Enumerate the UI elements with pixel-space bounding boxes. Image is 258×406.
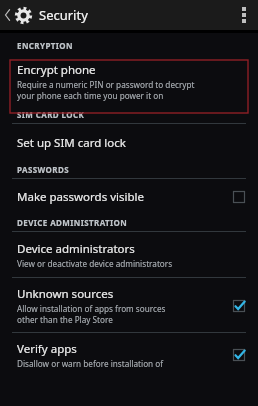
button[interactable]: Set up SIM card lock (0, 133, 258, 153)
staticText: Make passwords visible (17, 189, 232, 205)
staticText: Verify apps (17, 341, 77, 357)
button[interactable]: Unknown sources (0, 284, 258, 327)
staticText: SIM CARD LOCK (17, 109, 85, 120)
staticText: Set up SIM card lock (17, 135, 126, 151)
staticText: DEVICE ADMINISTRATION (17, 217, 128, 228)
staticText: PASSWORDS (17, 164, 70, 175)
staticText: View or deactivate device administrators (17, 258, 173, 269)
button[interactable]: Verify apps (0, 339, 258, 371)
button[interactable]: Device administrators (0, 239, 258, 271)
button[interactable]: More options (230, 0, 258, 30)
button[interactable]: Make passwords visible (0, 187, 258, 207)
staticText: Device administrators (17, 241, 135, 257)
staticText: Unknown sources (17, 286, 114, 302)
staticText: Allow installation of apps from sources (17, 303, 166, 314)
staticText: your phone each time you power it on (17, 90, 164, 101)
button[interactable]: Navigate up, Security (0, 0, 94, 30)
staticText: Encrypt phone (17, 62, 96, 78)
button[interactable]: Encrypt phone (0, 60, 258, 103)
staticText: Security (39, 6, 88, 24)
staticText: other than the Play Store (17, 314, 113, 325)
staticText: Disallow or warn before installation of (17, 358, 164, 369)
staticText: ENCRYPTION (17, 40, 73, 51)
staticText: Require a numeric PIN or password to dec… (17, 79, 195, 90)
